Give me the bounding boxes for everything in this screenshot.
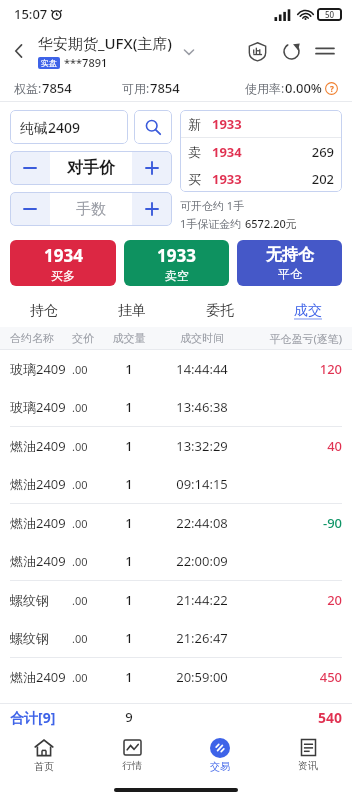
button[interactable]: 首页 xyxy=(0,730,88,780)
button[interactable]: 对手价 xyxy=(50,151,132,185)
staticText: 7854 xyxy=(42,79,72,97)
staticText: 1934 xyxy=(212,143,298,161)
staticText: 1933 xyxy=(212,170,298,188)
staticText: 1 xyxy=(104,437,154,455)
staticText: 买 xyxy=(188,171,212,187)
button[interactable]: Increase 对手价 xyxy=(132,151,172,185)
staticText: 权益: xyxy=(14,80,42,96)
button[interactable]: 新 xyxy=(180,110,342,192)
staticText: 120 xyxy=(250,360,342,378)
staticText: 1 xyxy=(104,552,154,570)
button[interactable]: Menu xyxy=(308,34,342,68)
button[interactable]: 燃油2409 xyxy=(0,658,352,696)
button[interactable]: 1933 xyxy=(124,240,229,286)
staticText: 买多 xyxy=(51,268,75,283)
button[interactable]: 成交 xyxy=(264,295,352,327)
staticText: .00 xyxy=(72,362,104,377)
staticText: 202 xyxy=(298,170,334,188)
staticText: 13:32:29 xyxy=(154,437,250,455)
staticText: 交价 xyxy=(72,331,104,345)
staticText: 22:44:08 xyxy=(154,514,250,532)
staticText: 合计[9] xyxy=(10,708,104,727)
button[interactable]: 纯碱2409 xyxy=(10,110,128,144)
staticText: 对手价 xyxy=(67,158,115,178)
staticText: 09:14:15 xyxy=(154,475,250,493)
staticText: 1 xyxy=(104,668,154,686)
staticText: 新 xyxy=(188,116,212,132)
button[interactable]: Refresh xyxy=(274,34,308,68)
button[interactable]: 玻璃2409 xyxy=(0,388,352,426)
staticText: ? xyxy=(330,83,334,94)
staticText: 纯碱2409 xyxy=(20,118,81,137)
button[interactable]: Search xyxy=(134,110,172,144)
staticText: 1 xyxy=(104,591,154,609)
staticText: 50 xyxy=(325,9,335,20)
staticText: ***7891 xyxy=(64,55,108,70)
button[interactable]: 委托 xyxy=(176,295,264,327)
staticText: 使用率: xyxy=(245,80,285,96)
staticText: 1934 xyxy=(44,244,83,267)
staticText: 玻璃2409 xyxy=(10,398,72,416)
staticText: 持仓 xyxy=(30,302,58,320)
button[interactable]: Back xyxy=(0,32,38,70)
staticText: 平仓盈亏(逐笔) xyxy=(250,331,342,346)
staticText: 269 xyxy=(298,143,334,161)
button[interactable]: 手数 xyxy=(50,192,132,226)
button[interactable]: Decrease 手数 xyxy=(10,192,50,226)
button[interactable]: 燃油2409 xyxy=(0,542,352,580)
staticText: 首页 xyxy=(34,760,54,773)
staticText: 手数 xyxy=(76,200,106,219)
button[interactable]: 行情 xyxy=(88,730,176,780)
staticText: 7854 xyxy=(150,79,180,97)
button[interactable]: 无持仓 xyxy=(237,240,342,286)
button[interactable]: 挂单 xyxy=(88,295,176,327)
staticText: 可用: xyxy=(122,80,150,96)
staticText: 委托 xyxy=(206,302,234,320)
staticText: 燃油2409 xyxy=(10,475,72,493)
button[interactable]: 资讯 xyxy=(264,730,352,780)
button[interactable]: Decrease 对手价 xyxy=(10,151,50,185)
staticText: .00 xyxy=(72,477,104,492)
button[interactable]: Help xyxy=(325,82,338,95)
staticText: 成交时间 xyxy=(154,331,250,345)
staticText: .00 xyxy=(72,554,104,569)
staticText: 1933 xyxy=(157,244,196,267)
staticText: 无持仓 xyxy=(266,245,314,265)
button[interactable]: 燃油2409 xyxy=(0,504,352,542)
staticText: 15:07 xyxy=(14,5,48,23)
staticText: 22:00:09 xyxy=(154,552,250,570)
button[interactable]: 交易 xyxy=(176,730,264,780)
button[interactable]: 1934 xyxy=(10,240,116,286)
button[interactable]: 螺纹钢2410 xyxy=(0,619,352,657)
button[interactable]: Switch account xyxy=(179,42,199,62)
staticText: 平仓 xyxy=(278,266,302,281)
staticText: 燃油2409 xyxy=(10,668,72,686)
staticText: 1 xyxy=(104,475,154,493)
button[interactable]: 持仓 xyxy=(0,295,88,327)
staticText: 1933 xyxy=(212,115,298,133)
staticText: 9 xyxy=(104,708,154,726)
button[interactable]: Increase 手数 xyxy=(132,192,172,226)
staticText: 20 xyxy=(250,591,342,609)
staticText: 40 xyxy=(250,437,342,455)
button[interactable]: 燃油2409 xyxy=(0,465,352,503)
staticText: 卖空 xyxy=(165,268,189,283)
staticText: .00 xyxy=(72,400,104,415)
staticText: 成交量 xyxy=(104,331,154,345)
staticText: 玻璃2409 xyxy=(10,360,72,378)
staticText: 华安期货_UFX(主席) xyxy=(38,33,173,53)
staticText: 燃油2409 xyxy=(10,514,72,532)
staticText: 21:44:22 xyxy=(154,591,250,609)
staticText: 1 xyxy=(104,398,154,416)
button[interactable]: 燃油2409 xyxy=(0,427,352,465)
button[interactable]: 螺纹钢2410 xyxy=(0,581,352,619)
button[interactable]: Stop loss xyxy=(240,34,274,68)
staticText: 14:44:44 xyxy=(154,360,250,378)
staticText: .00 xyxy=(72,631,104,646)
button[interactable]: 玻璃2409 xyxy=(0,350,352,388)
